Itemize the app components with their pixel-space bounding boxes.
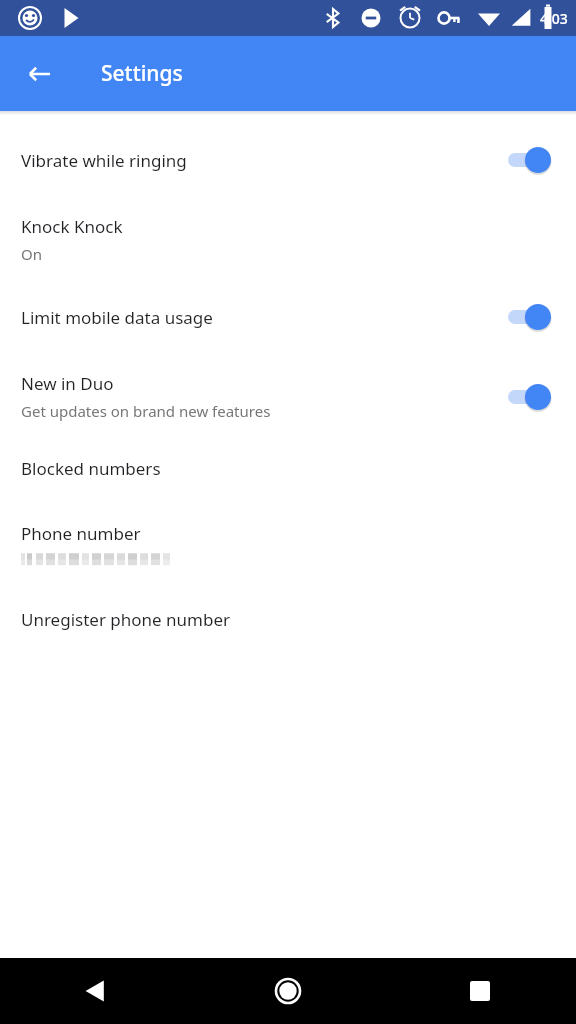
staticText: Settings bbox=[101, 59, 183, 88]
button[interactable]: Knock Knock bbox=[0, 215, 576, 264]
staticText: 4:03 bbox=[540, 9, 568, 28]
button[interactable]: Unregister phone number bbox=[0, 608, 576, 631]
button[interactable]: Home bbox=[192, 958, 384, 1024]
button[interactable] bbox=[504, 379, 556, 415]
staticText: On bbox=[21, 244, 42, 264]
staticText: Unregister phone number bbox=[21, 608, 231, 631]
button[interactable] bbox=[504, 299, 556, 335]
button[interactable]: Phone number bbox=[0, 522, 576, 568]
staticText: Get updates on brand new features bbox=[21, 401, 271, 421]
button[interactable] bbox=[504, 142, 556, 178]
staticText: Limit mobile data usage bbox=[21, 306, 504, 329]
staticText: Phone number bbox=[21, 522, 141, 545]
button[interactable]: Blocked numbers bbox=[0, 457, 576, 480]
button[interactable]: Back bbox=[16, 50, 64, 98]
staticText: Knock Knock bbox=[21, 215, 123, 238]
staticText: Blocked numbers bbox=[21, 457, 161, 480]
button[interactable]: Back bbox=[0, 958, 192, 1024]
staticText: Vibrate while ringing bbox=[21, 149, 504, 172]
button[interactable]: New in Duo bbox=[0, 372, 576, 421]
staticText: New in Duo bbox=[21, 372, 114, 395]
button[interactable]: Recent apps bbox=[384, 958, 576, 1024]
button[interactable]: Vibrate while ringing bbox=[0, 141, 576, 179]
button[interactable]: Limit mobile data usage bbox=[0, 298, 576, 336]
